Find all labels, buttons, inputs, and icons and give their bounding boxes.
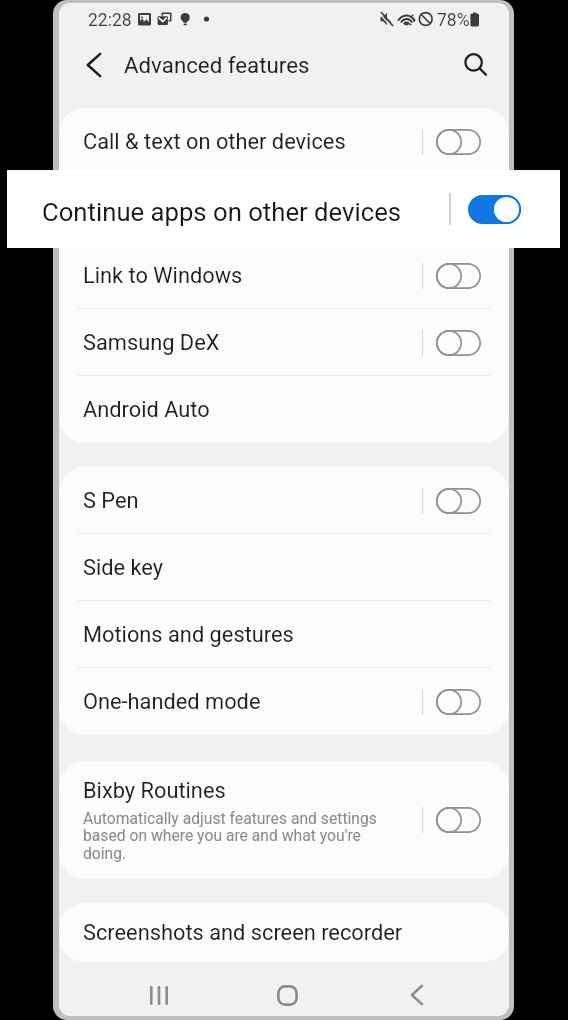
button[interactable]: Android Auto	[59, 376, 509, 443]
button[interactable]: Screenshots and screen recorder	[59, 903, 509, 962]
button[interactable]: Search	[450, 44, 492, 86]
staticText: Android Auto	[83, 397, 210, 423]
button[interactable]: S Pen	[59, 467, 509, 534]
staticText: Automatically adjust features and settin…	[83, 809, 383, 863]
staticText: Motions and gestures	[83, 622, 294, 648]
staticText: Advanced features	[124, 52, 310, 78]
staticText: S Pen	[83, 488, 139, 514]
staticText: Screenshots and screen recorder	[83, 920, 403, 946]
button[interactable]: Continue apps on other devices	[7, 170, 560, 248]
button[interactable]: Back	[352, 966, 481, 1016]
button[interactable]: Recent apps	[94, 966, 223, 1016]
staticText: 78%	[437, 10, 470, 31]
button[interactable]: Link to Windows	[59, 242, 509, 309]
button[interactable]: Navigate up	[73, 44, 115, 86]
button[interactable]: Call & text on other devices	[59, 108, 509, 175]
staticText: 22:28	[88, 10, 132, 31]
staticText: Continue apps on other devices	[83, 196, 388, 222]
button[interactable]: Continue apps on other devices	[59, 175, 509, 242]
staticText: Side key	[83, 555, 164, 581]
button[interactable]: Bixby Routines	[59, 761, 509, 879]
button[interactable]: Home	[223, 966, 352, 1016]
button[interactable]: Motions and gestures	[59, 601, 509, 668]
staticText: Call & text on other devices	[83, 129, 346, 155]
staticText: Bixby Routines	[83, 778, 226, 804]
button[interactable]: Samsung DeX	[59, 309, 509, 376]
staticText: Link to Windows	[83, 263, 243, 289]
button[interactable]: One-handed mode	[59, 668, 509, 735]
button[interactable]: Side key	[59, 534, 509, 601]
staticText: Samsung DeX	[83, 330, 220, 356]
staticText: One-handed mode	[83, 689, 261, 715]
staticText: Continue apps on other devices	[42, 197, 402, 227]
